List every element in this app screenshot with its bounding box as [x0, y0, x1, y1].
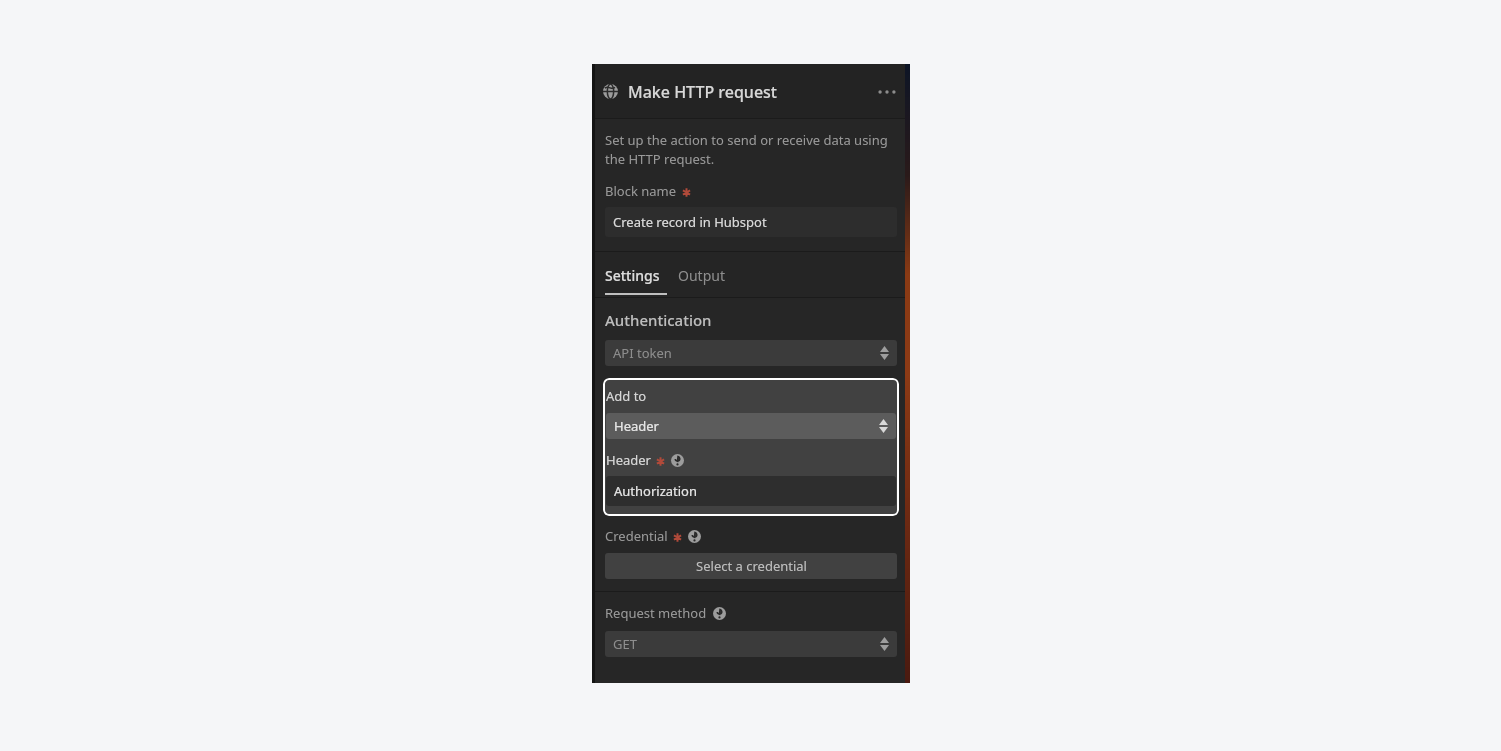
staticText: Select a credential: [696, 557, 807, 575]
button[interactable]: Select a credential: [605, 553, 897, 579]
button[interactable]: More options: [874, 79, 900, 105]
staticText: Authorization: [614, 482, 698, 500]
staticText: Request method: [605, 604, 707, 622]
button[interactable]: API token: [605, 340, 897, 366]
button[interactable]: Header: [606, 413, 896, 439]
staticText: Output: [678, 266, 725, 285]
staticText: Header: [606, 451, 651, 469]
button[interactable]: GET: [605, 631, 897, 657]
button[interactable]: Create record in Hubspot: [605, 207, 897, 237]
button[interactable]: Output: [678, 252, 725, 298]
staticText: Block name: [605, 182, 677, 200]
staticText: Set up the action to send or receive dat…: [605, 131, 897, 168]
staticText: Make HTTP request: [628, 81, 777, 103]
staticText: API token: [613, 344, 672, 362]
staticText: Settings: [605, 266, 660, 285]
staticText: Credential: [605, 527, 668, 545]
button[interactable]: Settings: [605, 252, 660, 298]
staticText: Add to: [606, 387, 647, 405]
staticText: GET: [613, 635, 637, 653]
staticText: Create record in Hubspot: [613, 213, 767, 231]
staticText: Authentication: [605, 310, 712, 330]
staticText: Header: [614, 417, 659, 435]
button[interactable]: Authorization: [606, 476, 896, 506]
